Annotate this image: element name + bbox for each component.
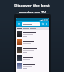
button[interactable] xyxy=(16,38,49,46)
button[interactable] xyxy=(16,54,49,62)
button[interactable] xyxy=(22,22,40,26)
button[interactable] xyxy=(16,62,49,70)
button[interactable] xyxy=(16,30,49,38)
button[interactable]: Search xyxy=(41,22,45,26)
button[interactable] xyxy=(16,46,49,54)
button[interactable]: Menu xyxy=(17,22,21,26)
staticText: movies on TV xyxy=(19,10,46,13)
button[interactable]: More options xyxy=(45,22,48,25)
staticText: Discover the best xyxy=(14,3,50,9)
